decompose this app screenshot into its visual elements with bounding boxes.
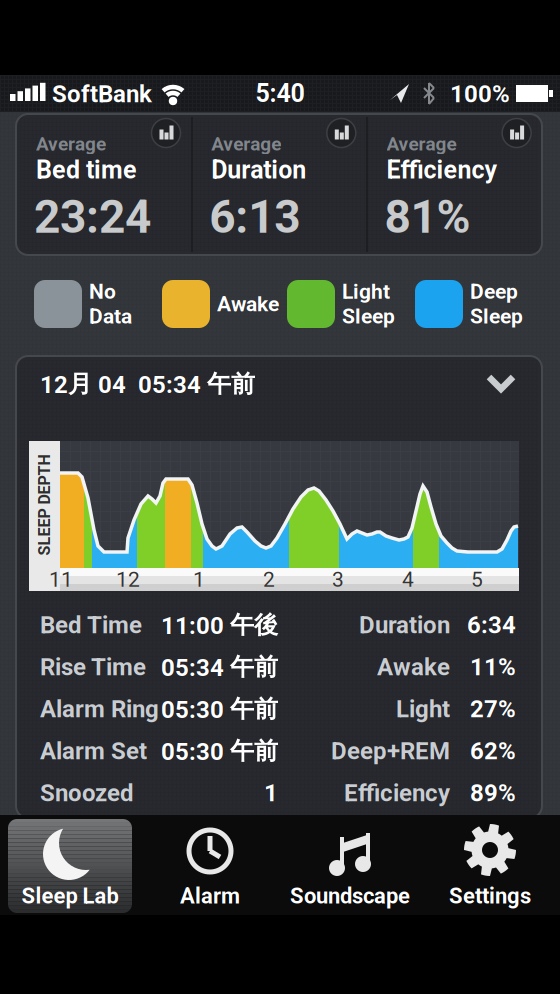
staticText: SoftBank — [52, 80, 152, 108]
staticText: Efficiency — [344, 779, 450, 807]
staticText: 2 — [263, 567, 275, 592]
staticText: Average — [387, 133, 457, 155]
staticText: 05:30 午前 — [161, 736, 278, 766]
staticText: Awake — [377, 653, 450, 681]
button[interactable]: Statistics chart — [151, 118, 180, 147]
staticText: 100% — [450, 80, 510, 108]
staticText: 11 — [49, 567, 73, 592]
staticText: 05:34 午前 — [161, 652, 278, 682]
staticText: Average — [211, 133, 281, 155]
staticText: Alarm Ring — [40, 695, 159, 723]
staticText: Snoozed — [40, 779, 134, 807]
staticText: 6:34 — [467, 611, 516, 639]
staticText: Duration — [359, 611, 450, 639]
staticText: Light — [396, 695, 450, 723]
staticText: Light Sleep — [342, 279, 395, 329]
staticText: 1 — [193, 567, 205, 592]
staticText: SLEEP DEPTH — [0, 496, 95, 514]
staticText: Deep+REM — [331, 737, 450, 765]
staticText: 11% — [470, 653, 516, 681]
staticText: 3 — [332, 567, 344, 592]
staticText: 12月 04 05:34 午前 — [40, 369, 255, 399]
staticText: 05:30 午前 — [161, 694, 278, 724]
staticText: 6:13 — [209, 190, 300, 244]
staticText: Settings — [449, 883, 531, 909]
staticText: Efficiency — [387, 155, 498, 185]
staticText: Rise Time — [40, 653, 146, 681]
staticText: 62% — [470, 737, 516, 765]
staticText: Awake — [217, 292, 279, 316]
staticText: Bed Time — [40, 611, 142, 639]
button[interactable]: Select night — [16, 356, 542, 412]
button[interactable]: Statistics chart — [502, 118, 531, 147]
staticText: Average — [36, 133, 106, 155]
staticText: Alarm — [180, 883, 240, 909]
staticText: 5 — [471, 567, 483, 592]
staticText: 89% — [470, 779, 516, 807]
button[interactable]: Soundscape — [280, 815, 420, 915]
staticText: 81% — [385, 190, 471, 244]
button[interactable]: Alarm — [140, 815, 280, 915]
staticText: Soundscape — [290, 883, 410, 909]
button[interactable]: Statistics chart — [327, 118, 356, 147]
staticText: 4 — [402, 567, 414, 592]
staticText: Duration — [211, 155, 306, 185]
staticText: Deep Sleep — [470, 279, 523, 329]
staticText: 5:40 — [255, 79, 304, 108]
staticText: 27% — [470, 695, 516, 723]
staticText: No Data — [89, 279, 132, 329]
button[interactable]: Sleep Lab — [0, 815, 140, 915]
staticText: Alarm Set — [40, 737, 147, 765]
staticText: 11:00 午後 — [161, 610, 278, 640]
staticText: Bed time — [36, 155, 137, 185]
staticText: 23:24 — [34, 190, 151, 244]
staticText: Sleep Lab — [21, 883, 118, 909]
staticText: 1 — [264, 779, 278, 807]
button[interactable]: Settings — [420, 815, 560, 915]
staticText: 12 — [116, 567, 140, 592]
